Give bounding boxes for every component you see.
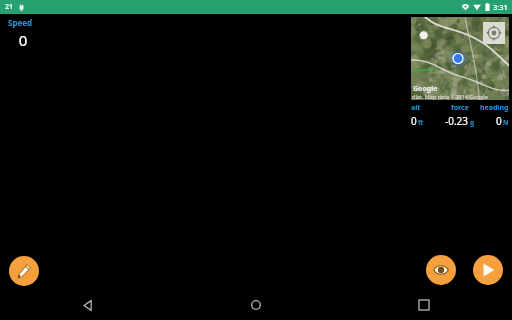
staticText: force	[451, 103, 469, 113]
staticText: N	[503, 118, 509, 127]
button[interactable]: alt	[411, 103, 441, 128]
button[interactable]: Center map	[483, 22, 505, 44]
staticText: g	[470, 118, 475, 127]
button[interactable]: Recents	[409, 290, 439, 320]
staticText: -0.23	[445, 114, 469, 128]
staticText: 3:31	[493, 2, 508, 12]
button[interactable]: View	[426, 255, 456, 285]
button[interactable]: Play	[473, 255, 503, 285]
staticText: 21	[5, 2, 14, 12]
button[interactable]: Back	[73, 290, 103, 320]
button[interactable]: force	[441, 103, 478, 128]
staticText: 0	[8, 30, 38, 50]
staticText: alt	[411, 103, 421, 113]
button[interactable]: Map	[411, 17, 509, 100]
button[interactable]: heading	[478, 103, 509, 128]
staticText: ft	[418, 118, 424, 127]
staticText: 0	[411, 114, 417, 128]
staticText: heading	[480, 103, 509, 113]
staticText: 0	[496, 114, 502, 128]
staticText: Google	[413, 84, 438, 94]
button[interactable]: Edit	[9, 256, 39, 286]
button[interactable]: Home	[241, 290, 271, 320]
staticText: Speed	[8, 17, 33, 28]
staticText: dlat, Map data ©2014 Google	[412, 93, 488, 100]
